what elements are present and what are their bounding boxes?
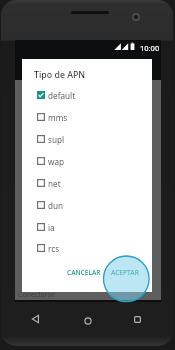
button[interactable]: rcs [22,237,152,259]
button[interactable]: net [22,172,152,194]
staticText: ia [48,222,55,233]
button[interactable]: dun [22,194,152,216]
button[interactable]: wap [22,150,152,172]
button[interactable]: ACEPTAR [109,264,141,281]
button[interactable]: Recent apps [130,312,145,327]
staticText: ACEPTAR [111,268,139,277]
button[interactable]: CANCELAR [65,264,103,281]
button[interactable]: Back [28,311,43,327]
button[interactable]: ia [22,216,152,238]
button[interactable]: mms [22,106,152,128]
button[interactable]: default [22,84,152,106]
staticText: supl [48,134,65,145]
staticText: dun [48,200,64,211]
staticText: wap [48,156,65,167]
button[interactable]: Home [80,313,95,328]
staticText: rcs [48,243,60,254]
staticText: Tipo de APN [34,69,86,81]
staticText: net [48,178,61,189]
staticText: CANCELAR [67,268,101,277]
staticText: Conectarse [18,290,55,300]
staticText: mms [48,112,68,123]
staticText: default [48,90,76,101]
staticText: 10:00 [140,43,160,53]
button[interactable]: supl [22,128,152,150]
